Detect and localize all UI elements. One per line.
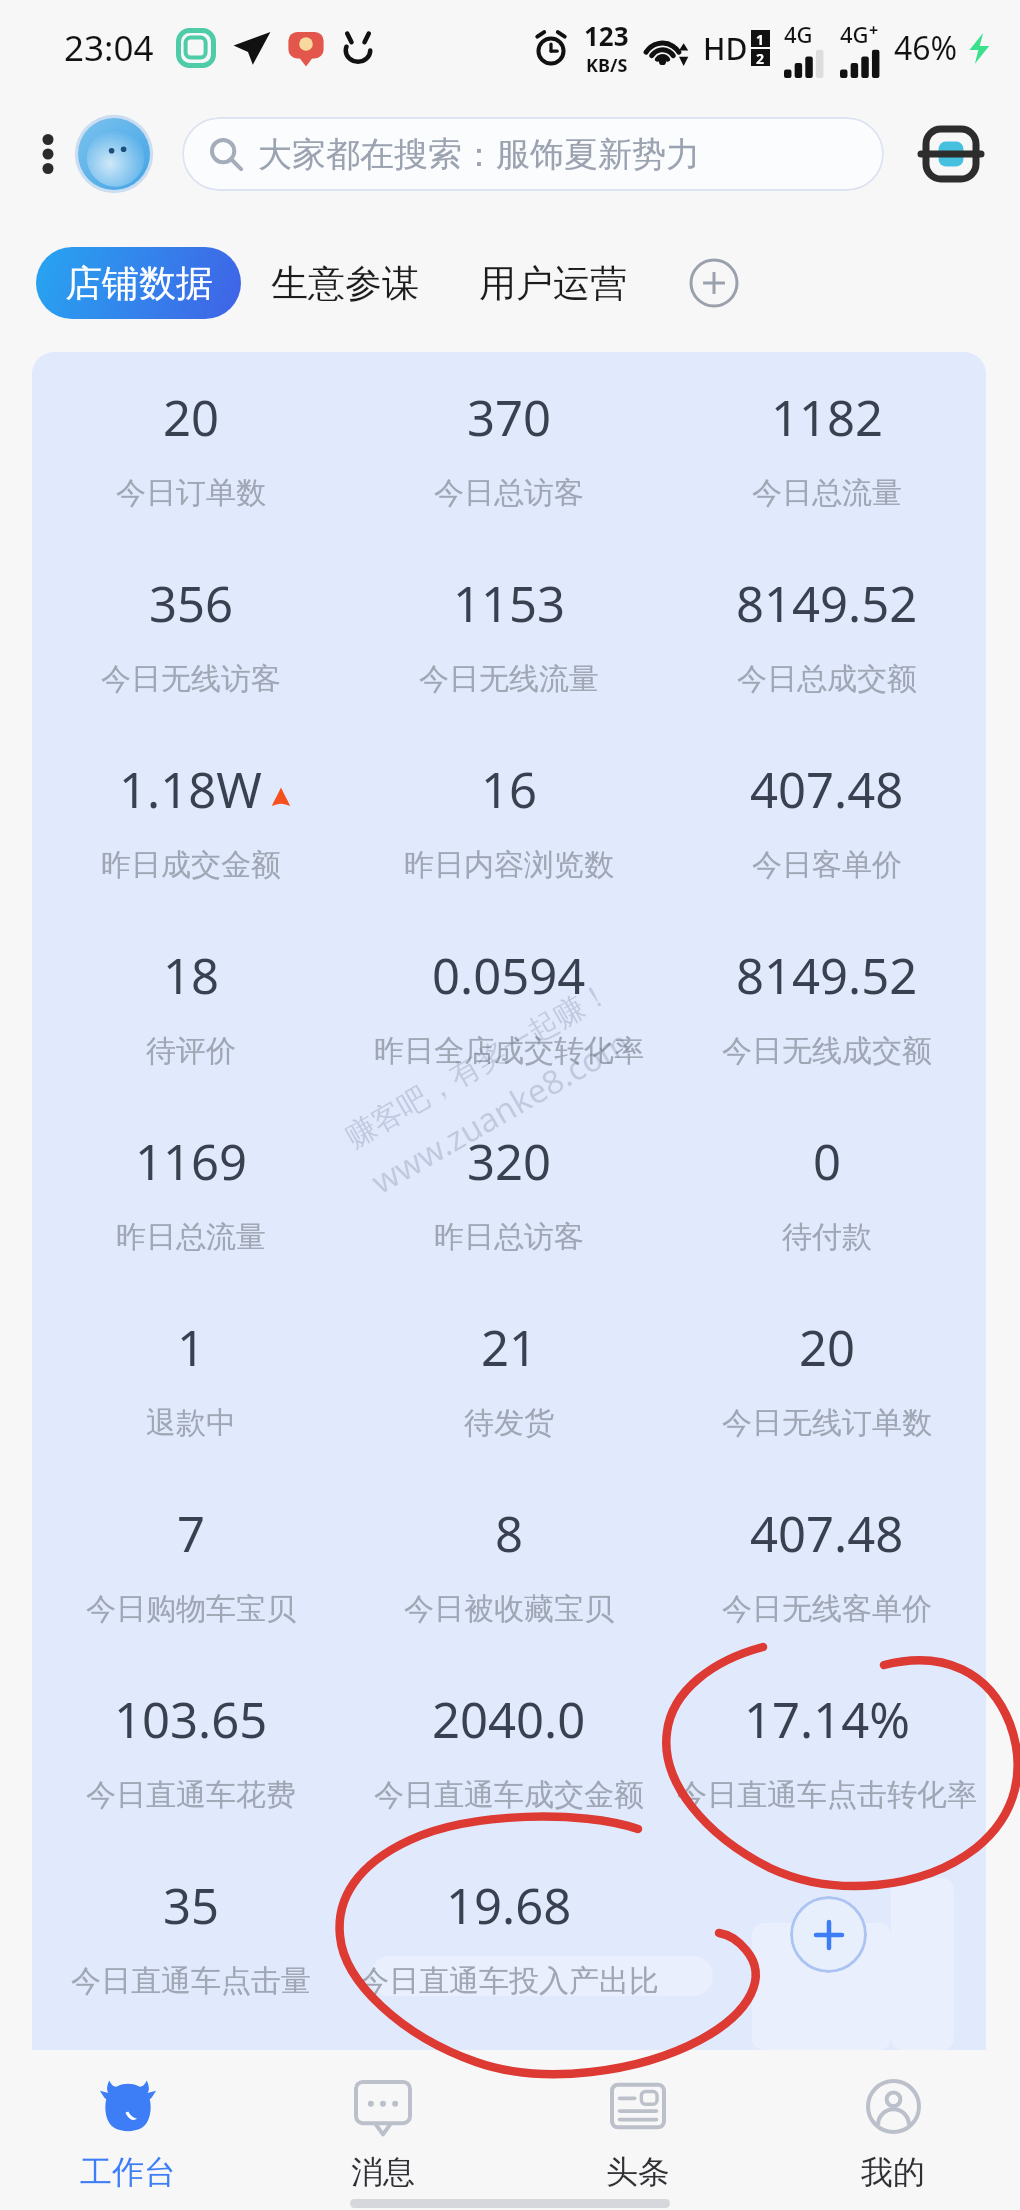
- button[interactable]: 8149.52: [668, 538, 986, 724]
- button[interactable]: 1153: [350, 538, 668, 724]
- button[interactable]: 103.65: [32, 1654, 350, 1840]
- button[interactable]: 大家都在搜索：服饰夏新势力: [182, 117, 884, 191]
- button[interactable]: 320: [350, 1096, 668, 1282]
- button[interactable]: 生意参谋: [241, 243, 449, 323]
- staticText: 20: [163, 384, 220, 451]
- staticText: 2: [756, 49, 765, 66]
- button[interactable]: 19.68: [350, 1840, 668, 2026]
- staticText: 123: [584, 18, 629, 53]
- staticText: 20: [799, 1314, 856, 1381]
- staticText: 407.48: [750, 756, 904, 823]
- staticText: 16: [481, 756, 538, 823]
- staticText: 4G: [784, 19, 813, 49]
- staticText: 103.65: [114, 1686, 268, 1753]
- staticText: 17.14%: [744, 1686, 910, 1753]
- button[interactable]: 2040.0: [350, 1654, 668, 1840]
- staticText: 0: [813, 1128, 842, 1195]
- button[interactable]: 17.14%: [668, 1654, 986, 1840]
- staticText: 今日无线订单数: [722, 1404, 932, 1442]
- button[interactable]: 1.18W: [32, 724, 350, 910]
- button[interactable]: 16: [350, 724, 668, 910]
- staticText: 7: [177, 1500, 206, 1567]
- button[interactable]: 0: [668, 1096, 986, 1282]
- staticText: 今日客单价: [752, 846, 902, 884]
- staticText: 2040.0: [432, 1686, 586, 1753]
- staticText: 退款中: [146, 1404, 236, 1442]
- staticText: 用户运营: [479, 260, 627, 307]
- staticText: 今日直通车投入产出比: [359, 1962, 659, 2000]
- button[interactable]: 用户运营: [449, 243, 657, 323]
- button[interactable]: 消息: [255, 2072, 510, 2196]
- staticText: 今日直通车点击量: [71, 1962, 311, 2000]
- staticText: 320: [467, 1128, 552, 1195]
- staticText: 21: [481, 1314, 538, 1381]
- staticText: 大家都在搜索：服饰夏新势力: [258, 133, 700, 176]
- button[interactable]: 8: [350, 1468, 668, 1654]
- staticText: HD: [703, 28, 748, 69]
- staticText: 370: [467, 384, 552, 451]
- staticText: 46%: [894, 26, 958, 70]
- staticText: 工作台: [80, 2152, 176, 2192]
- staticText: 1182: [771, 384, 884, 451]
- button[interactable]: Add metric: [790, 1896, 867, 1973]
- staticText: 今日无线流量: [419, 660, 599, 698]
- button[interactable]: 35: [32, 1840, 350, 2026]
- button[interactable]: 1169: [32, 1096, 350, 1282]
- staticText: 待发货: [464, 1404, 554, 1442]
- staticText: 今日总成交额: [737, 660, 917, 698]
- staticText: 1: [177, 1314, 206, 1381]
- staticText: 今日直通车花费: [86, 1776, 296, 1814]
- button[interactable]: 370: [350, 352, 668, 538]
- staticText: 今日被收藏宝贝: [404, 1590, 614, 1628]
- staticText: 昨日全店成交转化率: [374, 1032, 644, 1070]
- staticText: 1.18W: [119, 756, 262, 823]
- staticText: 待评价: [146, 1032, 236, 1070]
- staticText: 4G: [840, 19, 869, 49]
- button[interactable]: 407.48: [668, 724, 986, 910]
- staticText: 今日无线客单价: [722, 1590, 932, 1628]
- staticText: www.zuanke8.com: [363, 1019, 637, 1204]
- staticText: 今日购物车宝贝: [86, 1590, 296, 1628]
- staticText: 昨日内容浏览数: [404, 846, 614, 884]
- button[interactable]: 18: [32, 910, 350, 1096]
- staticText: 今日总流量: [752, 474, 902, 512]
- staticText: 头条: [606, 2152, 670, 2192]
- staticText: 昨日总流量: [116, 1218, 266, 1256]
- button[interactable]: 头条: [510, 2072, 765, 2196]
- button[interactable]: Scan QR code: [914, 117, 988, 191]
- button[interactable]: 工作台: [0, 2072, 255, 2196]
- staticText: 23:04: [64, 24, 154, 72]
- staticText: 今日订单数: [116, 474, 266, 512]
- staticText: 今日直通车点击转化率: [677, 1776, 977, 1814]
- button[interactable]: Add tab: [686, 255, 742, 311]
- button[interactable]: 20: [32, 352, 350, 538]
- button[interactable]: 356: [32, 538, 350, 724]
- staticText: 待付款: [782, 1218, 872, 1256]
- button[interactable]: 店铺数据: [36, 247, 241, 319]
- staticText: 18: [163, 942, 220, 1009]
- button[interactable]: More options: [26, 132, 70, 176]
- button[interactable]: [668, 1840, 986, 2026]
- button[interactable]: 我的: [765, 2072, 1020, 2196]
- staticText: 0.0594: [432, 942, 586, 1009]
- button[interactable]: 8149.52: [668, 910, 986, 1096]
- button[interactable]: 7: [32, 1468, 350, 1654]
- button[interactable]: 407.48: [668, 1468, 986, 1654]
- button[interactable]: 21: [350, 1282, 668, 1468]
- staticText: KB/S: [586, 53, 628, 78]
- staticText: 8149.52: [736, 570, 918, 637]
- staticText: 1153: [453, 570, 566, 637]
- staticText: 356: [149, 570, 234, 637]
- button[interactable]: 1: [32, 1282, 350, 1468]
- staticText: 今日总访客: [434, 474, 584, 512]
- button[interactable]: 0.0594: [350, 910, 668, 1096]
- button[interactable]: 1182: [668, 352, 986, 538]
- staticText: 19.68: [446, 1872, 572, 1939]
- staticText: 407.48: [750, 1500, 904, 1567]
- staticText: 1: [756, 30, 765, 47]
- staticText: 35: [163, 1872, 220, 1939]
- staticText: 昨日成交金额: [101, 846, 281, 884]
- button[interactable]: Profile avatar: [72, 112, 156, 196]
- staticText: 1169: [135, 1128, 248, 1195]
- button[interactable]: 20: [668, 1282, 986, 1468]
